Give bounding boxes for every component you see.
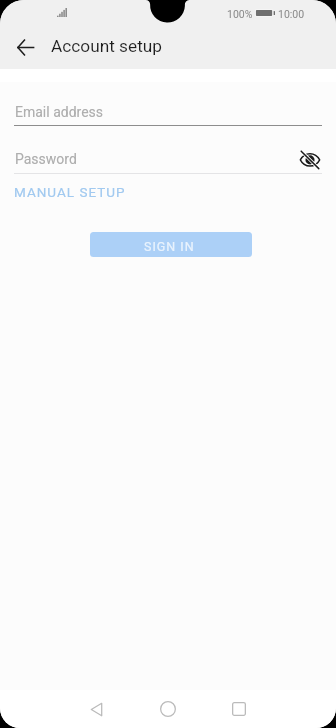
button[interactable]: SIGN IN [90, 232, 252, 257]
button[interactable]: MANUAL SETUP [14, 184, 126, 200]
staticText: Email address [15, 104, 104, 120]
button[interactable]: Back [9, 31, 42, 64]
staticText: Password [15, 151, 77, 167]
button[interactable]: Back [75, 690, 117, 728]
staticText: SIGN IN [144, 239, 195, 254]
button[interactable]: Home [147, 690, 189, 728]
staticText: 10:00 [278, 8, 305, 20]
button[interactable]: Recents [218, 690, 260, 728]
button[interactable]: Show password [296, 145, 324, 173]
staticText: 100% [227, 8, 253, 20]
staticText: Account setup [51, 36, 162, 56]
staticText: MANUAL SETUP [14, 184, 126, 200]
